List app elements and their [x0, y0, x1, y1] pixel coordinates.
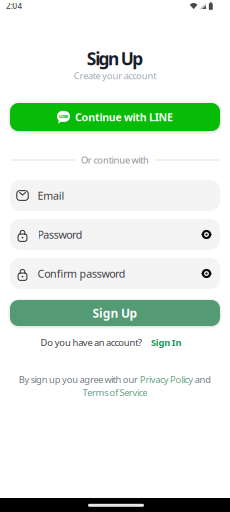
staticText: Terms of Service — [83, 386, 147, 399]
staticText: Sign Up — [87, 47, 143, 70]
button[interactable]: Privacy Policy — [140, 373, 193, 386]
button[interactable]: Show confirm password — [201, 268, 220, 278]
staticText: Privacy Policy — [140, 373, 193, 386]
staticText: By sign up you agree with our — [19, 373, 140, 386]
staticText: Password — [37, 227, 83, 242]
button[interactable]: Email — [10, 180, 220, 211]
button[interactable]: Password — [10, 219, 220, 250]
staticText: LINE — [59, 114, 68, 119]
staticText: Sign In — [151, 336, 181, 349]
button[interactable]: Sign In — [151, 336, 181, 349]
staticText: Confirm password — [37, 266, 126, 281]
button[interactable]: Confirm password — [10, 258, 220, 289]
staticText: Create your account — [74, 69, 156, 82]
staticText: and — [193, 373, 211, 386]
button[interactable]: Show password — [201, 229, 220, 239]
staticText: Continue with LINE — [75, 110, 173, 124]
staticText: Email — [37, 188, 64, 203]
staticText: Sign Up — [92, 305, 138, 321]
staticText: 2:04 — [6, 1, 22, 11]
button[interactable]: Sign Up — [10, 300, 220, 326]
staticText: Do you have an account? — [40, 336, 142, 349]
button[interactable]: LINE — [10, 103, 220, 131]
button[interactable]: Terms of Service — [83, 386, 147, 399]
staticText: Or continue with — [81, 154, 149, 166]
